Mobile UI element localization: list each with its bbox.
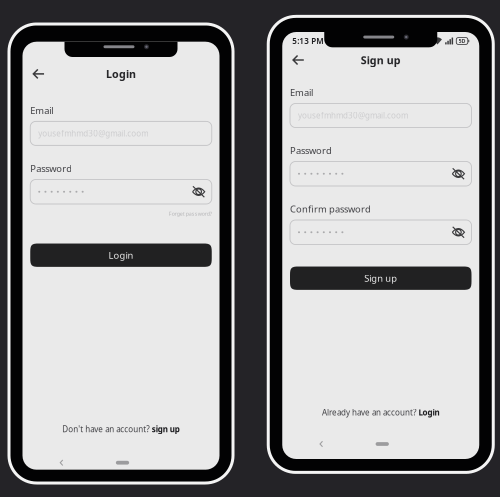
staticText: Don't have an account? <box>62 424 149 434</box>
staticText: Sign up <box>364 272 397 284</box>
staticText: Password <box>290 144 332 157</box>
staticText: Confirm password <box>290 203 371 215</box>
button[interactable]: Forget password? <box>169 210 212 217</box>
staticText: Forget password? <box>169 210 212 217</box>
staticText: Email <box>30 104 53 117</box>
staticText: Login <box>106 67 136 81</box>
staticText: Email <box>290 86 313 99</box>
button[interactable]: Show password <box>452 168 465 180</box>
button[interactable]: Login <box>30 243 212 267</box>
staticText: yousefmhmd30@gmail.coom <box>38 128 148 139</box>
button[interactable]: Show password <box>452 226 465 238</box>
staticText: Password <box>30 162 72 175</box>
button[interactable]: Sign up <box>290 266 471 290</box>
button[interactable]: Show password <box>192 186 205 198</box>
staticText: yousefmhmd30@gmail.coom <box>298 110 408 121</box>
staticText: Sign up <box>361 53 401 67</box>
button[interactable]: Back <box>286 50 310 70</box>
button[interactable]: Back <box>54 457 68 469</box>
button[interactable]: Home <box>367 438 397 450</box>
button[interactable]: Don't have an account? <box>62 424 180 435</box>
button[interactable]: Back <box>27 64 51 84</box>
staticText: 5D <box>459 37 466 45</box>
staticText: sign up <box>152 424 180 434</box>
staticText: 5:13 PM <box>292 36 323 46</box>
staticText: Already have an account? <box>322 407 416 418</box>
staticText: Login <box>418 407 439 418</box>
button[interactable]: Already have an account? <box>322 407 439 418</box>
button[interactable]: Back <box>314 438 328 450</box>
button[interactable]: Home <box>107 457 137 469</box>
staticText: Login <box>108 249 133 261</box>
